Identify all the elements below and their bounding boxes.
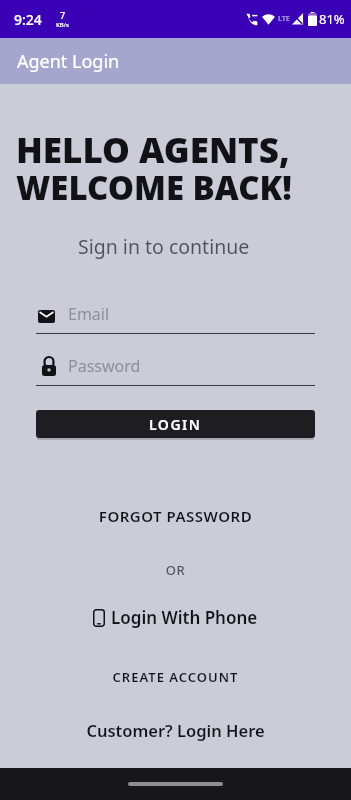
staticText: Agent Login	[17, 49, 120, 74]
button[interactable]: Password	[36, 355, 315, 386]
staticText: HELLO AGENTS,	[16, 126, 290, 174]
button[interactable]: Email	[36, 303, 315, 334]
staticText: KB/s	[56, 21, 69, 29]
staticText: OR	[0, 561, 351, 579]
staticText: Email	[68, 303, 110, 325]
staticText: Login With Phone	[111, 606, 258, 629]
button[interactable]: FORGOT PASSWORD	[0, 506, 351, 526]
staticText: WELCOME BACK!	[16, 165, 292, 210]
staticText: 7	[60, 9, 66, 21]
staticText: Sign in to continue	[78, 233, 250, 260]
staticText: 81%	[319, 10, 345, 28]
staticText: LTE	[278, 14, 290, 24]
button[interactable]: Customer? Login Here	[0, 719, 351, 741]
staticText: Password	[68, 355, 141, 377]
button[interactable]: LOGIN	[36, 410, 315, 438]
button[interactable]: Login With Phone	[93, 606, 258, 629]
staticText: LOGIN	[149, 415, 202, 434]
button[interactable]: CREATE ACCOUNT	[0, 668, 351, 686]
staticText: 9:24	[14, 10, 42, 29]
